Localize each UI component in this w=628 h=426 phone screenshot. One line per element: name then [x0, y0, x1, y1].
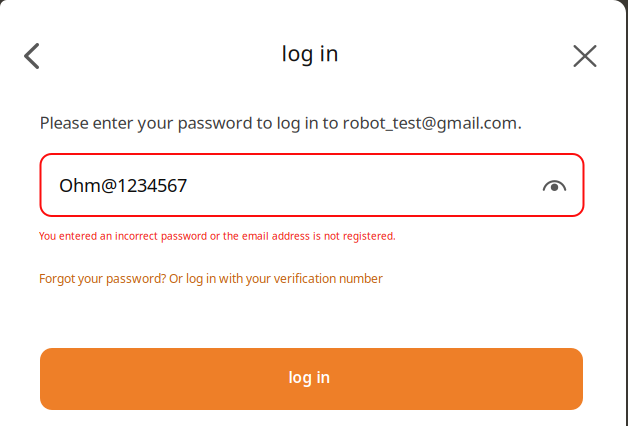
button[interactable]: Show password — [536, 165, 572, 205]
staticText: Ohm@1234567 — [59, 173, 187, 197]
staticText: Please enter your password to log in to … — [39, 111, 521, 134]
staticText: You entered an incorrect password or the… — [39, 229, 396, 243]
button[interactable]: Back — [7, 30, 55, 82]
staticText: log in — [281, 38, 338, 68]
staticText: Forgot your password? Or log in with you… — [39, 270, 383, 286]
button[interactable]: log in — [40, 348, 583, 410]
button[interactable]: Close — [561, 30, 609, 82]
button[interactable]: Forgot your password? Or log in with you… — [39, 270, 383, 286]
staticText: log in — [288, 366, 330, 388]
